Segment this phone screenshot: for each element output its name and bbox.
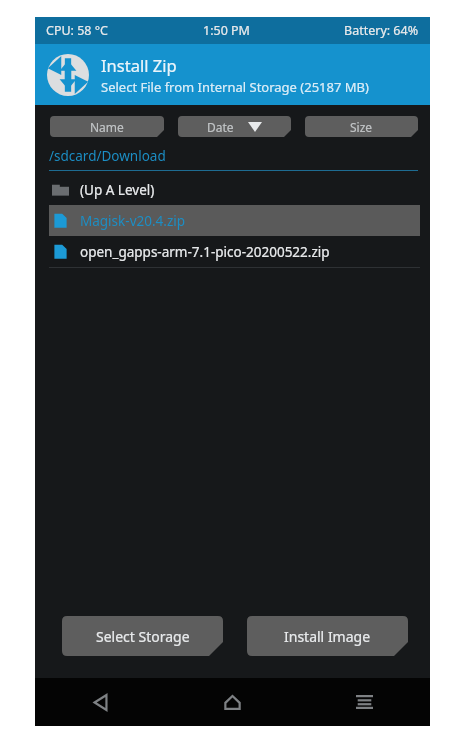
- staticText: Install Image: [284, 627, 371, 646]
- button[interactable]: Date: [178, 116, 291, 137]
- button[interactable]: Install Image: [247, 616, 408, 656]
- staticText: CPU: 58 °C: [46, 22, 109, 39]
- staticText: 1:50 PM: [203, 22, 250, 39]
- staticText: Date: [207, 119, 234, 135]
- button[interactable]: open_gapps-arm-7.1-pico-20200522.zip: [49, 236, 420, 267]
- staticText: Size: [350, 119, 373, 135]
- staticText: Name: [90, 119, 124, 135]
- staticText: Battery: 64%: [344, 22, 419, 39]
- staticText: (Up A Level): [80, 181, 155, 199]
- staticText: /sdcard/Download: [49, 147, 166, 165]
- button[interactable]: Size: [305, 116, 418, 137]
- staticText: Magisk-v20.4.zip: [80, 212, 186, 230]
- button[interactable]: (Up A Level): [49, 174, 420, 205]
- staticText: Select File from Internal Storage (25187…: [101, 78, 369, 96]
- staticText: open_gapps-arm-7.1-pico-20200522.zip: [80, 243, 330, 261]
- button[interactable]: Magisk-v20.4.zip: [49, 205, 420, 236]
- staticText: Install Zip: [101, 54, 177, 76]
- staticText: Select Storage: [96, 627, 190, 646]
- button[interactable]: Recent apps: [298, 678, 430, 726]
- button[interactable]: Select Storage: [62, 616, 223, 656]
- button[interactable]: Home: [166, 678, 298, 726]
- button[interactable]: Back: [35, 678, 166, 726]
- button[interactable]: Name: [50, 116, 164, 137]
